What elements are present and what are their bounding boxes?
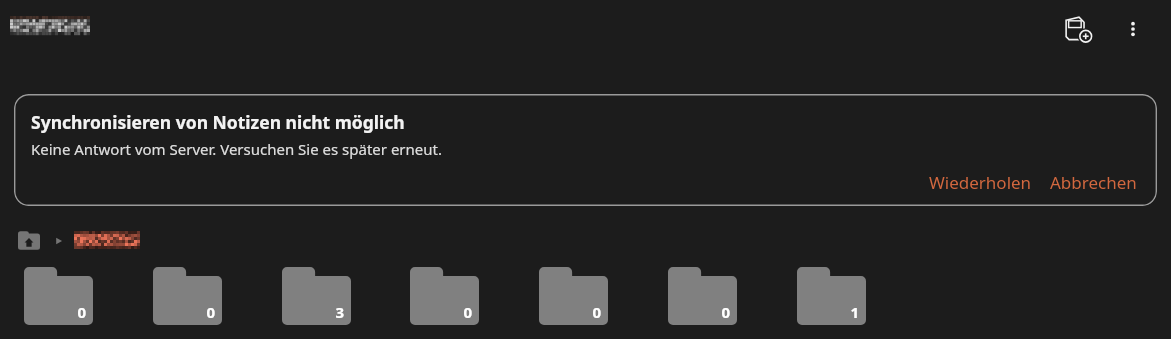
button[interactable] xyxy=(74,231,142,251)
staticText: Wiederholen xyxy=(929,171,1032,194)
staticText: Abbrechen xyxy=(1050,171,1137,194)
button[interactable]: 1 xyxy=(797,267,866,325)
button[interactable]: 0 xyxy=(153,267,222,325)
button[interactable]: Abbrechen xyxy=(1042,165,1145,200)
staticText: 3 xyxy=(335,302,344,322)
button[interactable]: 0 xyxy=(410,267,479,325)
staticText: Synchronisieren von Notizen nicht möglic… xyxy=(31,110,405,134)
staticText: 0 xyxy=(721,302,730,322)
button[interactable]: Home folder xyxy=(14,226,44,256)
staticText: 1 xyxy=(850,302,859,322)
staticText: 0 xyxy=(592,302,601,322)
button[interactable]: Synchronisieren von Notizen nicht möglic… xyxy=(14,94,1157,206)
staticText: 0 xyxy=(77,302,86,322)
button[interactable]: 0 xyxy=(24,267,93,325)
button[interactable]: Wiederholen xyxy=(921,165,1040,200)
staticText: Keine Antwort vom Server. Versuchen Sie … xyxy=(31,139,443,159)
button[interactable]: 0 xyxy=(668,267,737,325)
staticText: 0 xyxy=(206,302,215,322)
button[interactable] xyxy=(10,16,90,38)
button[interactable]: Create PDF xyxy=(1056,6,1102,52)
button[interactable]: 0 xyxy=(539,267,608,325)
staticText: 0 xyxy=(463,302,472,322)
button[interactable]: More options xyxy=(1110,6,1156,52)
button[interactable]: 3 xyxy=(282,267,351,325)
